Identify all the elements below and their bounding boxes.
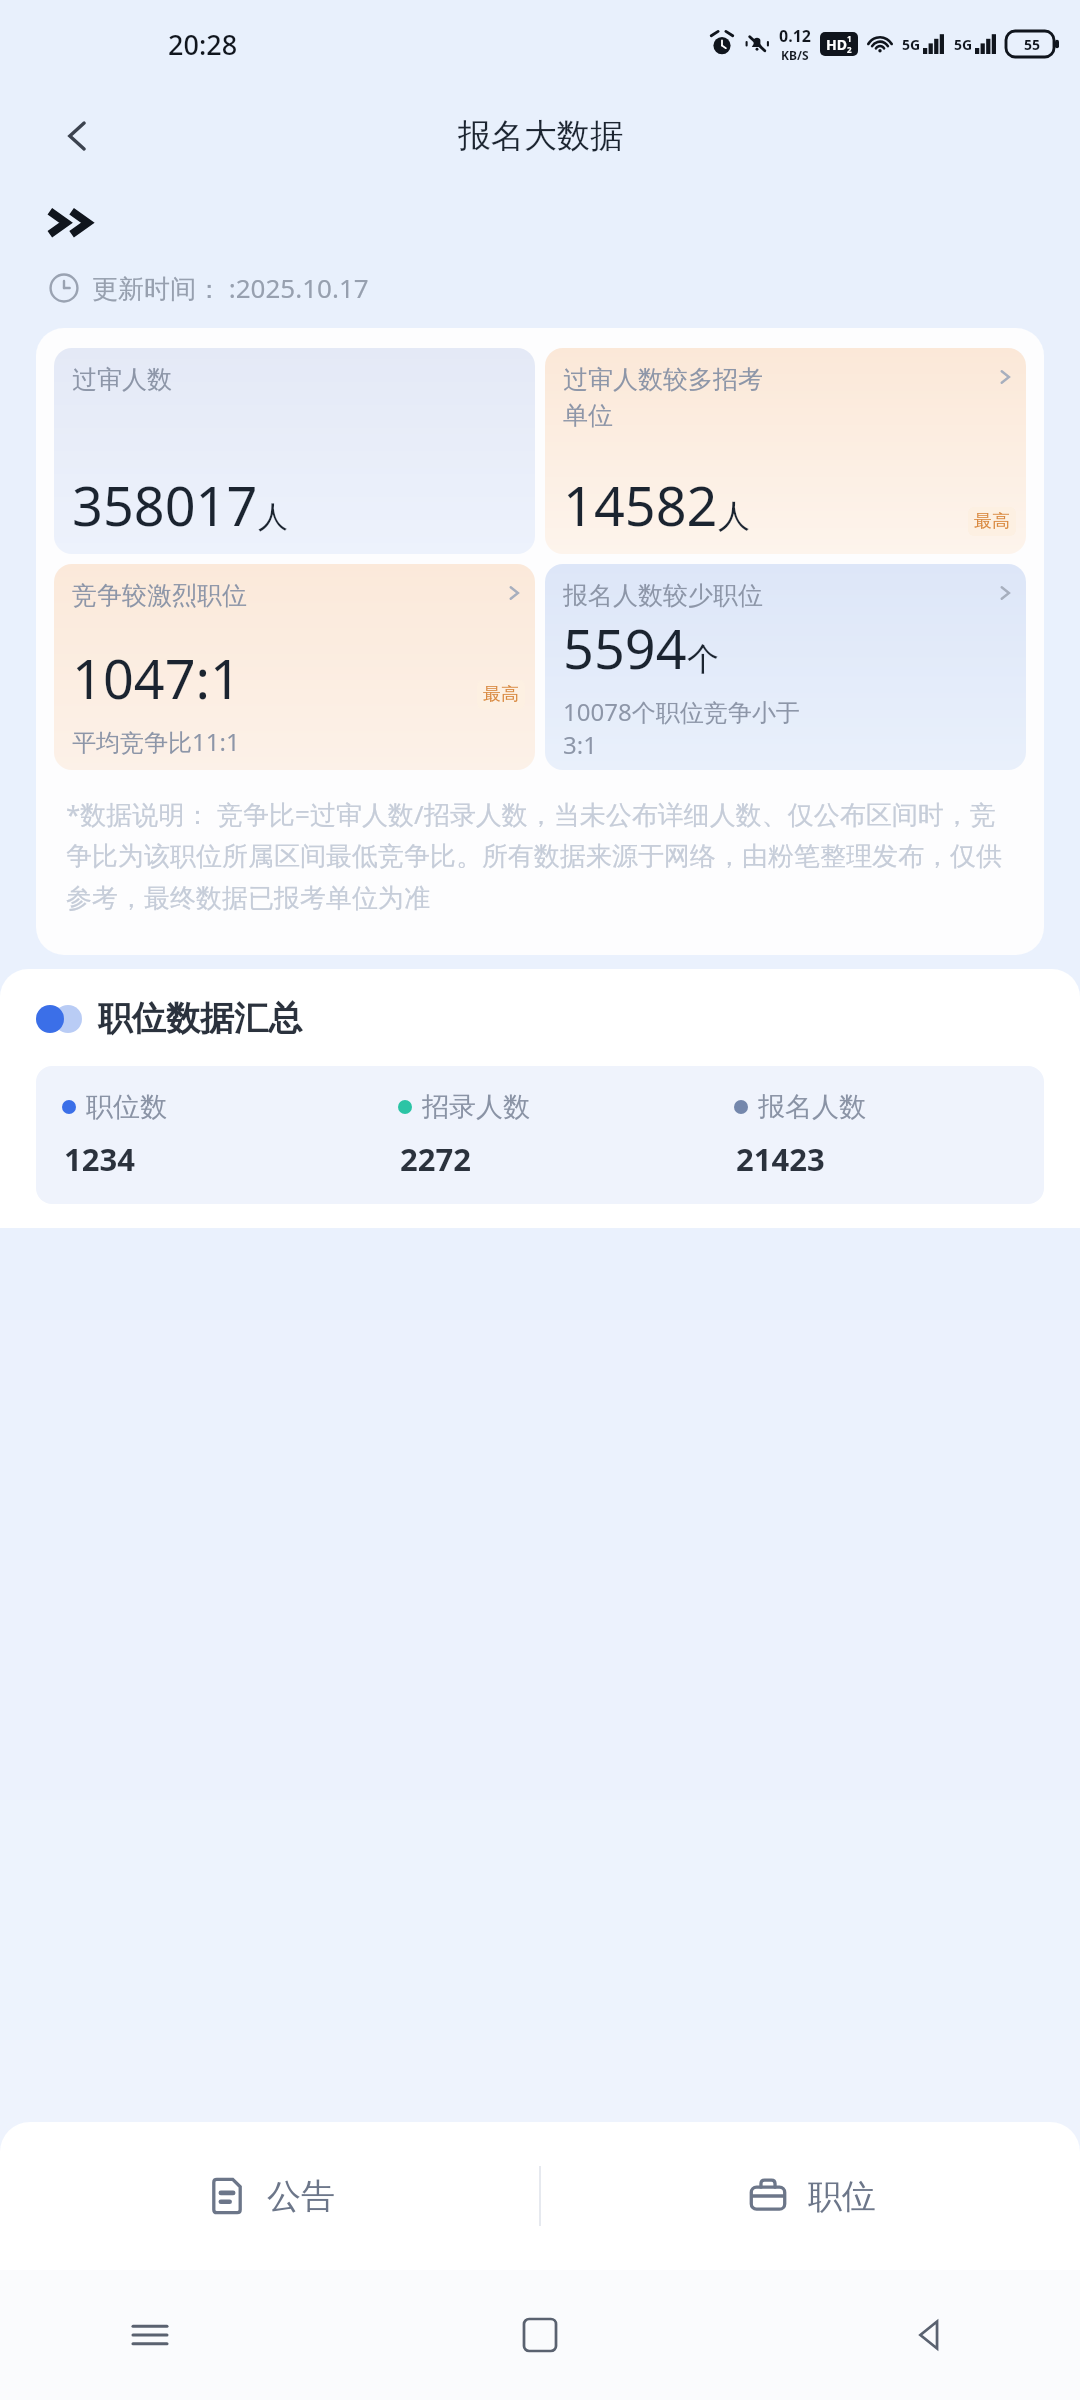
- button[interactable]: 职位: [541, 2122, 1080, 2270]
- staticText: 报名大数据: [458, 115, 623, 157]
- staticText: 招录人数: [422, 1090, 530, 1124]
- button[interactable]: Back: [48, 106, 108, 166]
- staticText: 过审人数: [72, 364, 525, 395]
- staticText: 竞争较激烈职位: [72, 580, 503, 611]
- button[interactable]: 竞争较激烈职位: [54, 564, 535, 770]
- staticText: 更新时间： :2025.10.17: [92, 270, 369, 306]
- staticText: *数据说明： 竞争比=过审人数/招录人数，当未公布详细人数、仅公布区间时，竞争比…: [66, 796, 1014, 915]
- staticText: 14582: [563, 468, 718, 542]
- staticText: 0.12: [779, 25, 811, 47]
- staticText: 5G: [902, 35, 921, 54]
- staticText: 20:28: [168, 26, 238, 63]
- staticText: 5G: [954, 35, 973, 54]
- staticText: 公告: [267, 2175, 335, 2218]
- button[interactable]: 过审人数: [54, 348, 535, 554]
- staticText: 1: [847, 33, 852, 44]
- button[interactable]: 过审人数较多招考 单位: [545, 348, 1026, 554]
- staticText: 职位数据汇总: [98, 997, 302, 1040]
- staticText: 报名人数较少职位: [563, 580, 994, 611]
- staticText: HD: [826, 35, 847, 54]
- staticText: 个: [687, 639, 719, 679]
- staticText: 55: [1024, 35, 1041, 54]
- staticText: 人: [718, 496, 750, 536]
- button[interactable]: 公告: [0, 2122, 539, 2270]
- staticText: 报名人数: [758, 1090, 866, 1124]
- staticText: 358017: [72, 468, 258, 542]
- staticText: 2272: [400, 1138, 471, 1180]
- staticText: 职位数: [86, 1090, 167, 1124]
- staticText: 平均竞争比11:1: [72, 725, 240, 758]
- staticText: 2: [847, 44, 852, 55]
- staticText: 5594: [563, 611, 687, 685]
- button[interactable]: 报名人数较少职位: [545, 564, 1026, 770]
- staticText: 最高: [974, 510, 1010, 533]
- button[interactable]: Back: [900, 2305, 960, 2365]
- staticText: 职位: [808, 2175, 876, 2218]
- staticText: KB/S: [781, 47, 809, 63]
- staticText: 人: [258, 498, 288, 536]
- button[interactable]: Home: [510, 2305, 570, 2365]
- staticText: 10078个职位竞争小于 3:1: [563, 695, 800, 761]
- staticText: 21423: [736, 1138, 825, 1180]
- button[interactable]: Recents: [120, 2305, 180, 2365]
- staticText: 过审人数较多招考 单位: [563, 364, 994, 431]
- staticText: 最高: [483, 683, 519, 706]
- staticText: 1047:1: [72, 641, 241, 715]
- staticText: 1234: [64, 1138, 135, 1180]
